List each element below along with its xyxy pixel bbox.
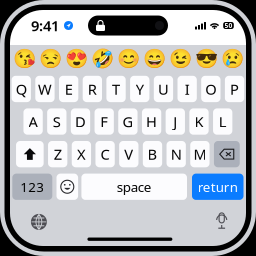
button[interactable]: U	[154, 76, 173, 102]
staticText: L	[219, 112, 227, 131]
staticText: 9:41	[31, 16, 59, 35]
button[interactable]: Shift	[16, 141, 44, 167]
staticText: G	[122, 112, 133, 131]
button[interactable]: C	[95, 141, 115, 167]
staticText: B	[147, 144, 157, 164]
button[interactable]: Q	[12, 76, 31, 102]
button[interactable]: Next keyboard	[31, 214, 47, 230]
staticText: K	[194, 112, 203, 131]
button[interactable]: K	[189, 108, 209, 135]
staticText: A	[29, 112, 38, 131]
button[interactable]: 😢	[220, 48, 243, 70]
staticText: 😍	[64, 48, 87, 70]
button[interactable]: T	[106, 76, 126, 102]
button[interactable]: S	[47, 108, 66, 135]
button[interactable]: Y	[130, 76, 149, 102]
button[interactable]: 😄	[142, 48, 165, 70]
staticText: 50	[224, 21, 232, 30]
button[interactable]: F	[95, 108, 114, 135]
button[interactable]: L	[213, 108, 232, 135]
staticText: H	[146, 112, 157, 131]
button[interactable]: 🤣	[90, 48, 113, 70]
staticText: 😢	[220, 48, 243, 70]
staticText: F	[100, 112, 108, 131]
button[interactable]: return	[192, 174, 243, 200]
staticText: Z	[54, 144, 62, 164]
staticText: I	[185, 79, 190, 99]
button[interactable]: 😒	[38, 48, 61, 70]
button[interactable]: Dictation	[216, 213, 228, 229]
staticText: U	[158, 79, 169, 99]
button[interactable]: B	[143, 141, 162, 167]
staticText: P	[230, 79, 239, 99]
staticText: 😎	[194, 48, 217, 70]
button[interactable]: A	[23, 108, 43, 135]
button[interactable]: 😘	[12, 48, 35, 70]
button[interactable]: 😍	[64, 48, 87, 70]
staticText: Y	[136, 79, 144, 99]
button[interactable]: H	[142, 108, 161, 135]
staticText: 🤣	[90, 48, 113, 70]
staticText: 😘	[12, 48, 35, 70]
staticText: N	[171, 144, 182, 164]
staticText: E	[65, 79, 73, 99]
staticText: W	[38, 79, 52, 99]
button[interactable]: 😊	[116, 48, 139, 70]
button[interactable]: 123	[12, 174, 52, 200]
staticText: 😉	[168, 48, 191, 70]
button[interactable]: W	[35, 76, 55, 102]
button[interactable]: P	[225, 76, 244, 102]
button[interactable]: O	[201, 76, 220, 102]
button[interactable]: space	[81, 174, 187, 200]
button[interactable]: I	[177, 76, 197, 102]
button[interactable]: Delete	[214, 141, 240, 167]
button[interactable]: Z	[48, 141, 67, 167]
staticText: S	[53, 112, 61, 131]
staticText: V	[124, 144, 133, 164]
button[interactable]: 😉	[168, 48, 191, 70]
staticText: R	[88, 79, 97, 99]
staticText: J	[173, 112, 177, 131]
staticText: C	[101, 144, 110, 164]
staticText: 😄	[142, 48, 165, 70]
staticText: 123	[20, 178, 44, 196]
button[interactable]: J	[166, 108, 185, 135]
staticText: M	[193, 144, 206, 164]
button[interactable]: M	[190, 141, 209, 167]
staticText: return	[198, 178, 238, 196]
staticText: 😒	[38, 48, 61, 70]
button[interactable]: D	[71, 108, 90, 135]
staticText: X	[77, 144, 86, 164]
staticText: O	[205, 79, 216, 99]
button[interactable]: G	[118, 108, 138, 135]
button[interactable]: X	[72, 141, 91, 167]
button[interactable]: E	[59, 76, 78, 102]
staticText: D	[75, 112, 86, 131]
staticText: space	[117, 178, 152, 196]
button[interactable]: 😎	[194, 48, 217, 70]
button[interactable]: R	[83, 76, 102, 102]
staticText: Q	[16, 79, 27, 99]
button[interactable]: N	[167, 141, 186, 167]
staticText: T	[112, 79, 120, 99]
staticText: 😊	[116, 48, 139, 70]
button[interactable]: V	[119, 141, 138, 167]
button[interactable]: Emoji	[56, 174, 78, 200]
